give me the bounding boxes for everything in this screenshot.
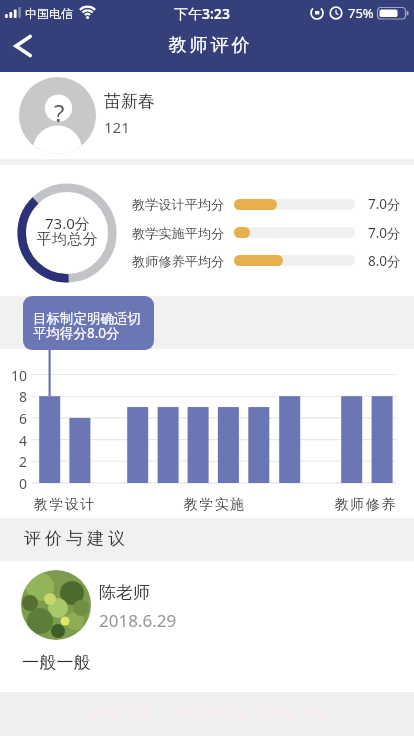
- staticText: 教学设计: [33, 496, 95, 514]
- staticText: 8: [19, 387, 28, 405]
- staticText: 下午3:23: [174, 4, 230, 23]
- staticText: 4: [19, 431, 28, 449]
- staticText: 7.0分: [368, 224, 401, 242]
- staticText: 75%: [348, 4, 374, 22]
- staticText: 2018.6.29: [99, 609, 177, 629]
- staticText: 教学设计平均分: [132, 196, 225, 212]
- staticText: 2: [19, 452, 28, 470]
- staticText: 苗新春: [104, 91, 155, 111]
- staticText: 教师修养: [334, 496, 396, 514]
- staticText: 平均总分: [36, 230, 98, 249]
- staticText: 7.0分: [368, 195, 401, 213]
- staticText: 陈老师: [99, 582, 150, 602]
- staticText: 121: [104, 117, 130, 137]
- staticText: 目标制定明确适切: [33, 310, 141, 327]
- staticText: 一般一般: [22, 652, 91, 672]
- staticText: 中国电信: [25, 6, 73, 21]
- staticText: 6: [19, 409, 28, 427]
- staticText: 平均得分8.0分: [33, 324, 120, 342]
- button[interactable]: [0, 26, 50, 72]
- button[interactable]: [23, 296, 154, 350]
- staticText: 评价与建议: [22, 528, 127, 548]
- button[interactable]: [0, 72, 414, 159]
- button[interactable]: [0, 561, 414, 692]
- staticText: 教师评价: [167, 34, 251, 57]
- staticText: 教师修养平均分: [132, 253, 225, 269]
- staticText: 0: [19, 474, 28, 492]
- staticText: 8.0分: [368, 252, 401, 270]
- staticText: 10: [11, 366, 28, 384]
- staticText: 教学实施: [183, 496, 245, 514]
- staticText: 教学实施平均分: [132, 225, 225, 241]
- staticText: 73.0分: [45, 213, 90, 233]
- staticText: ?: [54, 96, 65, 124]
